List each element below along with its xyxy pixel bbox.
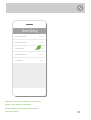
button[interactable]: App preview [13, 28, 46, 88]
staticText: Simple steps to reduce waste today and l… [5, 107, 41, 113]
button[interactable]: Banner image [6, 3, 85, 13]
staticText: Green Living [22, 29, 38, 33]
button[interactable] [13, 52, 46, 57]
staticText: Recycling tips for a greener home and ho… [5, 100, 41, 106]
button[interactable]: Recycling tips for a greener home and ho… [5, 100, 41, 113]
button[interactable] [13, 34, 46, 39]
button[interactable] [13, 58, 46, 63]
button[interactable] [13, 46, 46, 51]
button[interactable] [13, 40, 46, 45]
